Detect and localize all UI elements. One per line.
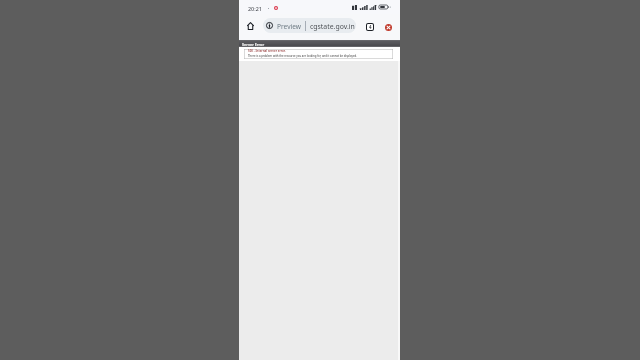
button[interactable]: Tabs [363,20,377,34]
button[interactable]: Preview [263,18,356,33]
staticText: 20:21 [248,5,262,12]
button[interactable]: Stop loading [381,20,395,34]
staticText: Server Error [242,42,265,47]
staticText: There is a problem with the resource you… [248,54,357,58]
staticText: 500 - Internal server error. [248,49,286,53]
staticText: 4 [369,24,372,30]
staticText: Preview [277,22,301,31]
staticText: cgstate.gov.in [310,22,355,31]
button[interactable]: Home [243,19,257,33]
